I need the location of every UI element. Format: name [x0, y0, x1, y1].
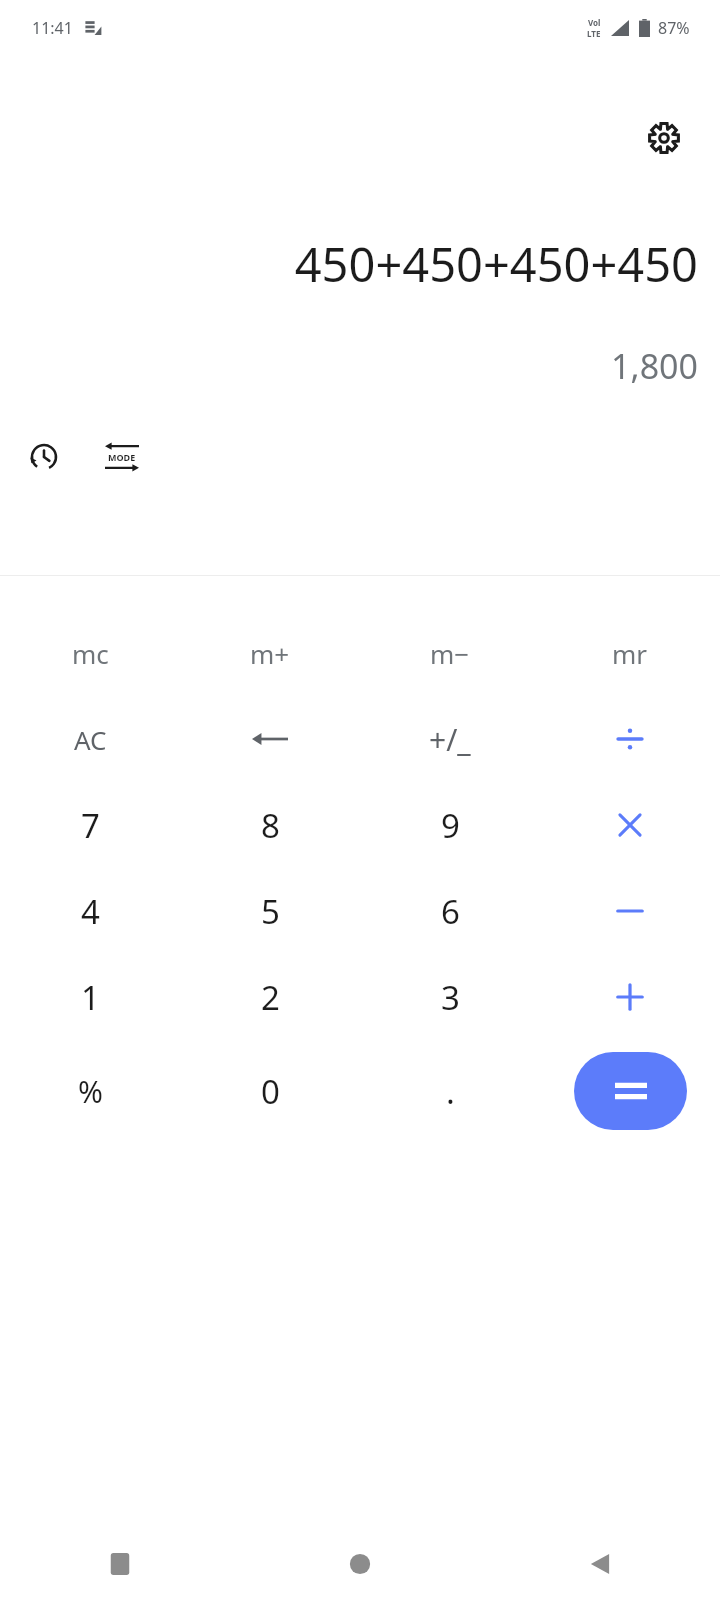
button[interactable]: Divide — [540, 708, 720, 770]
button[interactable]: History — [16, 429, 72, 485]
button[interactable]: 3 — [360, 966, 540, 1028]
button[interactable]: Home — [240, 1528, 480, 1600]
button[interactable]: . — [360, 1052, 540, 1130]
staticText: 8 — [261, 803, 280, 848]
button[interactable]: AC — [0, 708, 180, 770]
staticText: 4 — [81, 889, 100, 934]
staticText: mc — [72, 636, 109, 671]
staticText: 450+450+450+450 — [294, 232, 698, 296]
staticText: 6 — [441, 889, 460, 934]
button[interactable]: +/_ — [360, 708, 540, 770]
staticText: % — [78, 1071, 103, 1112]
button[interactable]: 4 — [0, 880, 180, 942]
button[interactable]: 7 — [0, 794, 180, 856]
staticText: 1 — [81, 975, 100, 1020]
button[interactable]: Multiply — [540, 794, 720, 856]
button[interactable]: 6 — [360, 880, 540, 942]
button[interactable]: mc — [0, 622, 180, 684]
staticText: 3 — [441, 975, 460, 1020]
button[interactable]: 5 — [180, 880, 360, 942]
staticText: 11:41 — [32, 17, 73, 39]
button[interactable]: mr — [540, 622, 720, 684]
button[interactable]: 9 — [360, 794, 540, 856]
button[interactable]: Equals — [574, 1052, 687, 1130]
button[interactable]: m− — [360, 622, 540, 684]
staticText: +/_ — [429, 719, 471, 760]
staticText: 0 — [261, 1069, 280, 1114]
button[interactable]: Plus — [540, 966, 720, 1028]
staticText: 7 — [81, 803, 100, 848]
staticText: 1,800 — [611, 343, 698, 389]
button[interactable]: 0 — [180, 1052, 360, 1130]
staticText: mr — [612, 636, 648, 671]
button[interactable]: 2 — [180, 966, 360, 1028]
staticText: AC — [74, 722, 107, 757]
staticText: m+ — [250, 636, 290, 671]
button[interactable]: Backspace — [180, 708, 360, 770]
staticText: 9 — [441, 803, 460, 848]
staticText: . — [446, 1069, 455, 1114]
staticText: 87% — [658, 17, 690, 39]
staticText: MODE — [108, 451, 136, 463]
button[interactable]: Back — [480, 1528, 720, 1600]
button[interactable]: Minus — [540, 880, 720, 942]
button[interactable]: m+ — [180, 622, 360, 684]
button[interactable]: 1 — [0, 966, 180, 1028]
button[interactable]: % — [0, 1052, 180, 1130]
staticText: 2 — [261, 975, 280, 1020]
staticText: 5 — [261, 889, 280, 934]
button[interactable]: Mode — [94, 429, 150, 485]
staticText: LTE — [587, 28, 601, 39]
button[interactable]: Settings — [636, 110, 692, 166]
staticText: m− — [430, 636, 470, 671]
button[interactable]: 8 — [180, 794, 360, 856]
staticText: Vol — [588, 17, 601, 28]
button[interactable]: Recent apps — [0, 1528, 240, 1600]
